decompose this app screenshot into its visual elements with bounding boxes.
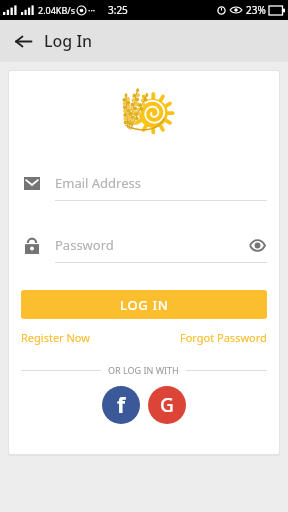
staticText: f xyxy=(117,391,126,420)
button[interactable]: Register Now xyxy=(21,330,90,345)
button[interactable]: Log in with Facebook xyxy=(102,386,140,424)
button[interactable]: Back xyxy=(9,27,37,55)
staticText: LOG IN xyxy=(120,296,169,314)
staticText: ··· xyxy=(88,4,96,16)
staticText: OR LOG IN WITH xyxy=(108,364,179,376)
button[interactable]: Email Address xyxy=(21,172,267,201)
button[interactable]: Log in with Google xyxy=(148,386,186,424)
button[interactable]: Forgot Password xyxy=(180,330,267,345)
staticText: G xyxy=(160,392,174,418)
button[interactable]: Show password xyxy=(247,235,267,255)
staticText: 23% xyxy=(246,3,266,17)
button[interactable]: Password xyxy=(21,234,267,263)
staticText: 2.04KB/s xyxy=(38,4,75,16)
staticText: Email Address xyxy=(55,174,141,192)
staticText: Log In xyxy=(44,30,93,52)
staticText: 3:25 xyxy=(108,3,128,17)
staticText: Register Now xyxy=(21,330,90,345)
staticText: Password xyxy=(55,236,114,254)
button[interactable]: LOG IN xyxy=(21,290,267,319)
staticText: Forgot Password xyxy=(180,330,267,345)
